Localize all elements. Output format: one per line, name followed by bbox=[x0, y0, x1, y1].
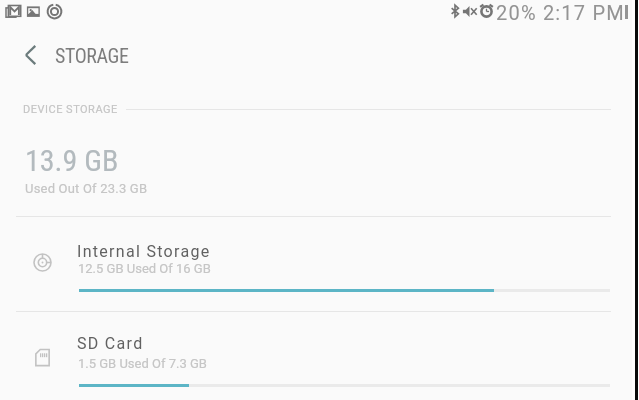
staticText: DEVICE STORAGE bbox=[23, 103, 118, 116]
button[interactable]: Internal Storage bbox=[0, 228, 639, 302]
staticText: 12.5 GB Used Of 16 GB bbox=[78, 261, 211, 276]
staticText: 20% 2:17 PM bbox=[496, 1, 625, 24]
button[interactable]: SD Card bbox=[0, 322, 639, 396]
button[interactable]: Back bbox=[12, 37, 48, 73]
staticText: STORAGE bbox=[55, 44, 129, 67]
staticText: Internal Storage bbox=[77, 242, 211, 261]
staticText: SD Card bbox=[77, 334, 144, 353]
staticText: Used Out Of 23.3 GB bbox=[25, 181, 148, 196]
staticText: 1.5 GB Used Of 7.3 GB bbox=[78, 356, 207, 371]
staticText: 13.9 GB bbox=[25, 143, 119, 178]
